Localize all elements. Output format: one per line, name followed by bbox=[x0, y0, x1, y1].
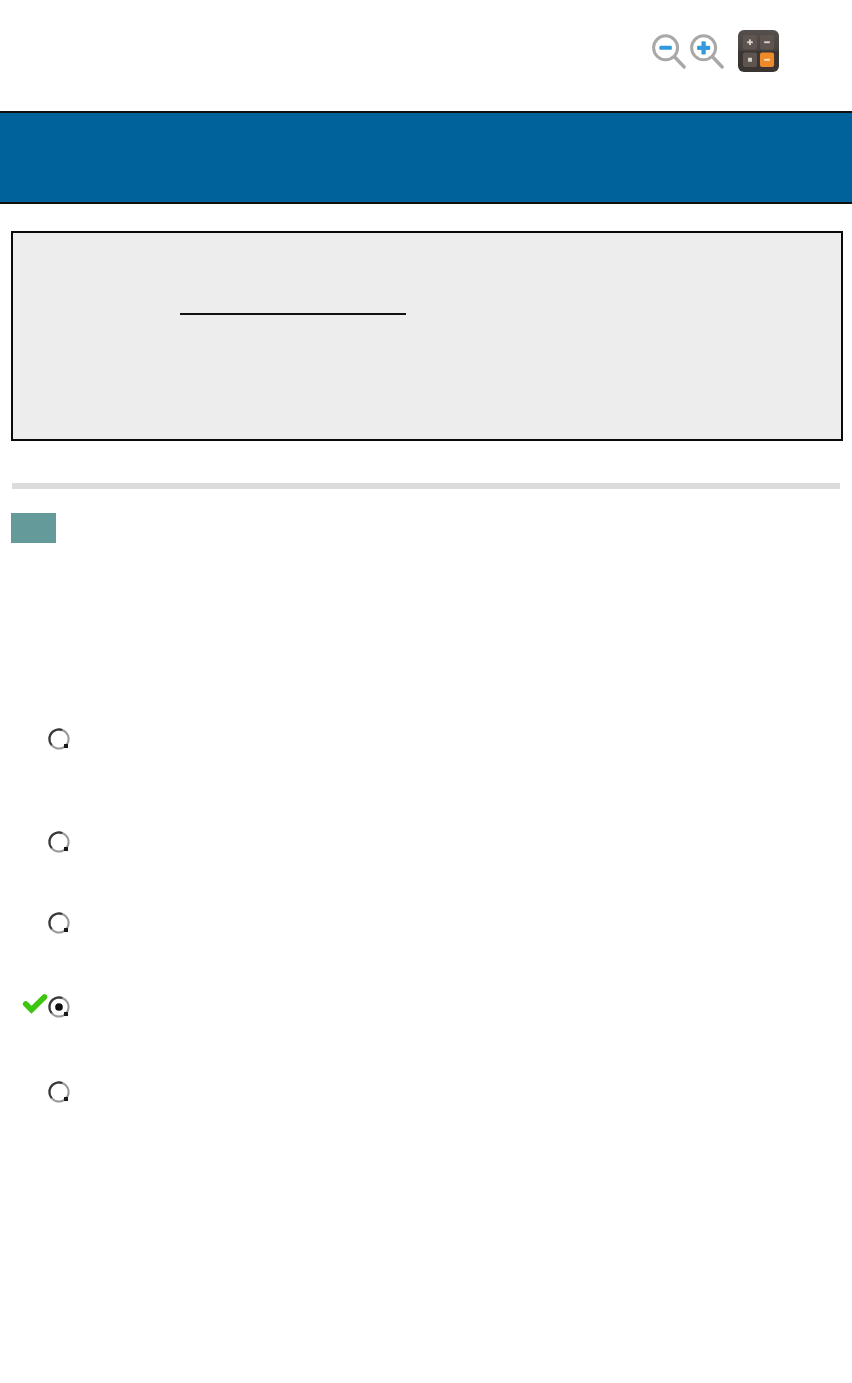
button[interactable]: Zoom in bbox=[686, 31, 726, 73]
button[interactable]: Selected option bbox=[47, 995, 71, 1019]
button[interactable]: Option 5 bbox=[47, 1080, 71, 1104]
button[interactable]: Calculator bbox=[738, 30, 779, 72]
button[interactable]: Option 2 bbox=[47, 830, 71, 854]
button[interactable]: Option 3 bbox=[47, 911, 71, 935]
button[interactable]: Zoom out bbox=[648, 31, 688, 73]
button[interactable]: Option 1 bbox=[47, 727, 71, 751]
